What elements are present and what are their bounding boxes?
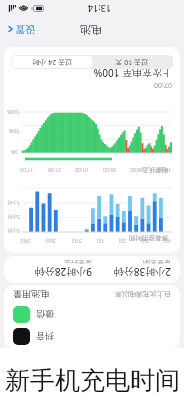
staticText: 30日: [45, 237, 56, 244]
staticText: 29日: [20, 237, 31, 244]
button[interactable]: 微信: [13, 304, 171, 326]
staticText: 21:00: [48, 166, 61, 173]
staticText: 07:00: [154, 80, 172, 90]
staticText: 抖音: [36, 331, 54, 342]
staticText: 09:00: [130, 166, 143, 173]
staticText: 17:00: [20, 166, 33, 173]
staticText: 2小时38分钟: [113, 265, 171, 279]
staticText: 电池: [80, 23, 102, 37]
button[interactable]: 抖音: [13, 326, 171, 348]
staticText: 屏幕使用时间: [129, 234, 168, 242]
staticText: 01:00: [75, 166, 88, 173]
staticText: 5小时: [7, 227, 20, 234]
staticText: 4日: [163, 237, 171, 244]
staticText: 设置: [15, 23, 35, 36]
staticText: 05:00: [103, 166, 116, 173]
staticText: 0%: [10, 148, 18, 155]
staticText: 上次充电至 100%: [93, 69, 172, 80]
staticText: 3小时: [7, 213, 20, 220]
staticText: 13:14: [87, 3, 111, 15]
staticText: 新手机充电时间: [5, 365, 180, 396]
staticText: 屏幕关闭: [143, 260, 171, 265]
staticText: 13:00: [158, 166, 171, 173]
staticText: 微信: [36, 309, 54, 320]
staticText: 2日: [118, 237, 126, 244]
staticText: 过去 10 天: [115, 57, 148, 67]
staticText: 1小时: [7, 199, 20, 206]
staticText: 100%: [7, 108, 20, 115]
staticText: 电量状态: [142, 166, 168, 174]
staticText: 自上次充满电以来: [115, 290, 171, 299]
staticText: 过去 24 小时: [32, 57, 72, 67]
staticText: 3日: [141, 237, 149, 244]
staticText: 电池用量: [13, 289, 49, 300]
staticText: 31日: [71, 237, 82, 244]
staticText: 9小时28分钟: [34, 265, 92, 279]
button[interactable]: 设置: [6, 23, 35, 36]
button[interactable]: 过去 24 小时: [12, 56, 92, 68]
staticText: 屏幕打开: [64, 260, 92, 265]
staticText: 50%: [9, 127, 19, 134]
staticText: 1日: [96, 237, 104, 244]
button[interactable]: 过去 10 天: [92, 56, 172, 68]
